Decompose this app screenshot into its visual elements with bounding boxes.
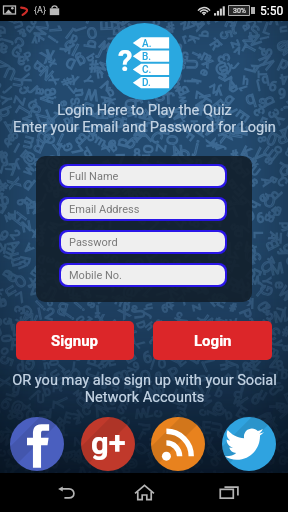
staticText: Login Here to Play the Quiz [57, 101, 232, 118]
staticText: 30% [233, 7, 246, 15]
staticText: B. [142, 51, 152, 63]
staticText: Signup [51, 332, 99, 350]
staticText: Login [194, 332, 232, 350]
staticText: C. [142, 64, 152, 76]
staticText: D. [142, 77, 151, 89]
staticText: Email Address [69, 203, 140, 216]
staticText: Password [69, 236, 118, 249]
button[interactable]: Home [96, 473, 192, 512]
button[interactable]: Mobile No. [61, 265, 225, 285]
button[interactable]: Google Plus [81, 417, 135, 471]
staticText: 5:50 [260, 4, 284, 18]
staticText: {A} [34, 5, 46, 16]
button[interactable]: Back [0, 473, 96, 512]
button[interactable]: Facebook [10, 417, 64, 471]
button[interactable]: Email Address [61, 199, 225, 219]
staticText: OR you may also sign up with your Social… [12, 371, 277, 406]
staticText: ? [118, 44, 133, 78]
button[interactable]: Full Name [61, 166, 225, 186]
staticText: Enter your Email and Password for Login [13, 118, 276, 135]
staticText: A. [142, 38, 152, 50]
staticText: Mobile No. [69, 269, 122, 282]
button[interactable]: Twitter [222, 417, 276, 471]
button[interactable]: RSS [151, 417, 205, 471]
button[interactable]: Recents [192, 473, 288, 512]
staticText: g+ [91, 425, 126, 461]
button[interactable]: Password [61, 232, 225, 252]
staticText: Full Name [69, 170, 119, 183]
button[interactable]: Signup [16, 321, 134, 360]
button[interactable]: Login [153, 321, 272, 360]
